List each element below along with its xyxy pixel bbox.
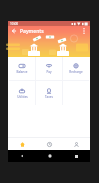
staticText: Taxes: [45, 95, 53, 99]
staticText: Utilities: [17, 95, 28, 99]
staticText: Recharge: [69, 70, 83, 74]
button[interactable]: Account: [63, 138, 90, 150]
button[interactable]: Back: [8, 150, 36, 162]
button[interactable]: Activity: [36, 138, 63, 150]
button[interactable]: More options: [78, 25, 90, 37]
staticText: Payments: [20, 28, 44, 35]
button[interactable]: Balance: [9, 57, 35, 80]
button[interactable]: Home: [8, 138, 36, 150]
staticText: 10:00: [10, 22, 19, 26]
button[interactable]: Taxes: [36, 81, 62, 105]
button[interactable]: Utilities: [9, 81, 35, 105]
staticText: Balance: [16, 70, 28, 74]
staticText: Pay: [46, 70, 52, 74]
button[interactable]: Recent apps: [63, 150, 90, 162]
button[interactable]: Recharge: [63, 57, 89, 80]
button[interactable]: Home: [36, 150, 63, 162]
button[interactable]: Back: [8, 25, 20, 37]
button[interactable]: Pay: [36, 57, 62, 80]
